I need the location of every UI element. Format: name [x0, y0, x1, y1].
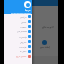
staticText: تسجيل خروج: [16, 55, 27, 58]
staticText: الرئيسية: [20, 16, 27, 18]
button[interactable]: الإشعارات: [4, 34, 32, 39]
button[interactable]: العروض: [4, 39, 32, 44]
staticText: الإشعارات: [19, 36, 27, 38]
staticText: example@gmail.com: [11, 12, 31, 14]
staticText: حسابي: [21, 21, 27, 23]
button[interactable]: الطلبات: [4, 24, 32, 29]
staticText: العروض: [20, 41, 27, 43]
button[interactable]: المفضلة لدي: [4, 29, 32, 34]
button[interactable]: تسجيل خروج: [4, 54, 32, 59]
staticText: المفضلة لدي: [17, 30, 27, 33]
staticText: اتصل بنا: [20, 50, 27, 53]
staticText: الطلبات: [20, 26, 27, 28]
button[interactable]: الإعدادات: [4, 44, 32, 49]
button[interactable]: اتصل بنا: [4, 49, 32, 54]
button[interactable]: الرئيسية: [4, 14, 32, 19]
button[interactable]: حسابي: [4, 19, 32, 24]
staticText: مرحبا: [25, 9, 31, 12]
staticText: إضافة منتج: [40, 46, 50, 49]
staticText: الإعدادات: [19, 46, 27, 48]
button[interactable]: Profile photo: [24, 1, 31, 8]
staticText: لا توجد نتائج: [42, 25, 54, 28]
